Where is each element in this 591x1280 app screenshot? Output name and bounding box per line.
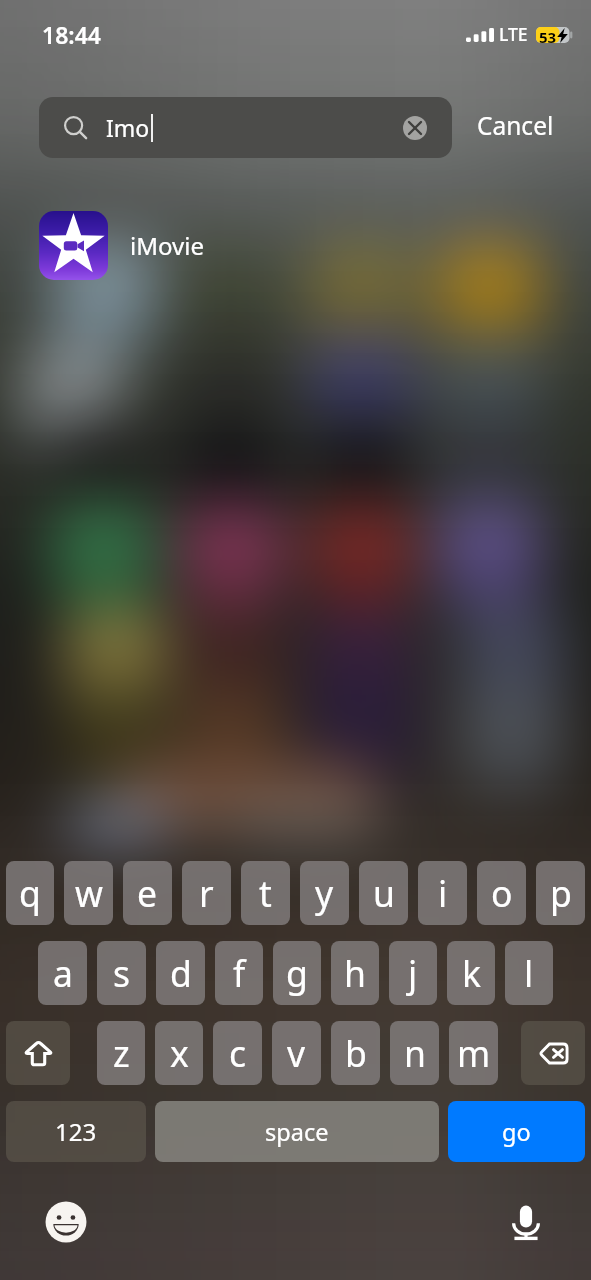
button[interactable]: d <box>156 941 205 1005</box>
button[interactable]: m <box>449 1021 498 1085</box>
button[interactable]: iMovie <box>0 211 591 280</box>
staticText: v <box>287 1029 306 1077</box>
staticText: h <box>344 949 366 997</box>
staticText: i <box>438 869 448 917</box>
button[interactable]: o <box>477 861 526 925</box>
staticText: 53 <box>539 27 557 43</box>
staticText: c <box>229 1029 247 1077</box>
button[interactable]: l <box>505 941 553 1005</box>
staticText: k <box>462 949 481 997</box>
button[interactable]: p <box>536 861 585 925</box>
button[interactable]: space <box>155 1101 439 1162</box>
staticText: f <box>233 949 246 997</box>
staticText: y <box>315 869 334 917</box>
staticText: go <box>502 1116 531 1148</box>
button[interactable]: n <box>390 1021 439 1085</box>
button[interactable]: Dictation <box>505 1201 547 1243</box>
staticText: g <box>286 949 308 997</box>
button[interactable]: Cancel <box>465 97 566 158</box>
button[interactable]: 123 <box>6 1101 146 1162</box>
button[interactable]: Imo <box>39 97 452 158</box>
staticText: d <box>170 949 192 997</box>
staticText: iMovie <box>130 229 204 262</box>
button[interactable]: a <box>38 941 87 1005</box>
button[interactable]: z <box>97 1021 145 1085</box>
button[interactable]: i <box>418 861 467 925</box>
staticText: x <box>170 1029 189 1077</box>
button[interactable]: s <box>97 941 146 1005</box>
button[interactable]: Shift <box>6 1021 70 1085</box>
staticText: z <box>113 1029 130 1077</box>
button[interactable]: go <box>448 1101 585 1162</box>
button[interactable]: q <box>6 861 54 925</box>
button[interactable]: v <box>272 1021 321 1085</box>
staticText: m <box>457 1029 491 1077</box>
staticText: e <box>137 869 158 917</box>
staticText: b <box>345 1029 367 1077</box>
staticText: 18:44 <box>42 19 101 50</box>
button[interactable]: t <box>241 861 290 925</box>
button[interactable]: Clear text <box>403 116 427 140</box>
button[interactable]: k <box>447 941 495 1005</box>
button[interactable]: h <box>331 941 379 1005</box>
staticText: n <box>404 1029 426 1077</box>
button[interactable]: u <box>359 861 408 925</box>
staticText: o <box>491 869 513 917</box>
button[interactable]: r <box>182 861 231 925</box>
staticText: Imo <box>106 112 150 143</box>
button[interactable]: e <box>123 861 172 925</box>
staticText: 123 <box>55 1115 97 1148</box>
button[interactable]: x <box>155 1021 203 1085</box>
staticText: r <box>199 869 214 917</box>
staticText: j <box>408 949 418 997</box>
staticText: l <box>524 949 534 997</box>
button[interactable]: Emoji keyboard <box>44 1200 88 1244</box>
button[interactable]: j <box>389 941 437 1005</box>
staticText: a <box>53 949 73 997</box>
staticText: t <box>259 869 272 917</box>
button[interactable]: f <box>215 941 263 1005</box>
button[interactable]: c <box>213 1021 262 1085</box>
staticText: w <box>75 869 103 917</box>
button[interactable]: w <box>64 861 113 925</box>
button[interactable]: y <box>300 861 349 925</box>
staticText: LTE <box>499 22 528 46</box>
button[interactable]: g <box>273 941 321 1005</box>
staticText: space <box>265 1116 329 1148</box>
staticText: s <box>113 949 131 997</box>
staticText: Cancel <box>477 109 554 142</box>
staticText: p <box>550 869 572 917</box>
button[interactable]: Backspace <box>521 1021 585 1085</box>
staticText: q <box>19 869 41 917</box>
staticText: u <box>373 869 395 917</box>
button[interactable]: b <box>331 1021 380 1085</box>
